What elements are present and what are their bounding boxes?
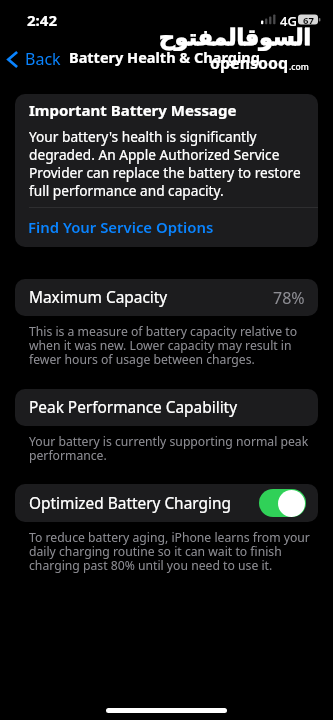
button[interactable]: Peak Performance Capability [15, 389, 318, 426]
staticText: 4G [280, 12, 297, 30]
staticText: This is a measure of battery capacity re… [29, 323, 309, 368]
button[interactable]: Optimized Battery Charging toggle [259, 489, 306, 517]
staticText: Maximum Capacity [29, 287, 168, 308]
staticText: To reduce battery aging, iPhone learns f… [29, 529, 317, 574]
staticText: opensooq [210, 52, 289, 74]
staticText: Important Battery Message [29, 100, 237, 120]
staticText: Your battery's health is significantly d… [29, 127, 305, 200]
button[interactable]: Find Your Service Options [15, 206, 318, 247]
staticText: 2:42 [27, 10, 57, 30]
staticText: 67 [303, 14, 314, 27]
staticText: 78% [273, 287, 305, 309]
button[interactable]: Maximum Capacity [15, 279, 318, 316]
staticText: .com [289, 61, 309, 73]
staticText: Optimized Battery Charging [29, 493, 231, 514]
staticText: Peak Performance Capability [29, 397, 238, 418]
button[interactable]: Back [4, 44, 67, 74]
staticText: Battery Health & Charging [69, 47, 260, 67]
staticText: Your battery is currently supporting nor… [29, 433, 309, 464]
staticText: Find Your Service Options [28, 217, 214, 237]
staticText: Back [25, 48, 61, 70]
staticText: السوقالمفتوح [159, 25, 312, 51]
